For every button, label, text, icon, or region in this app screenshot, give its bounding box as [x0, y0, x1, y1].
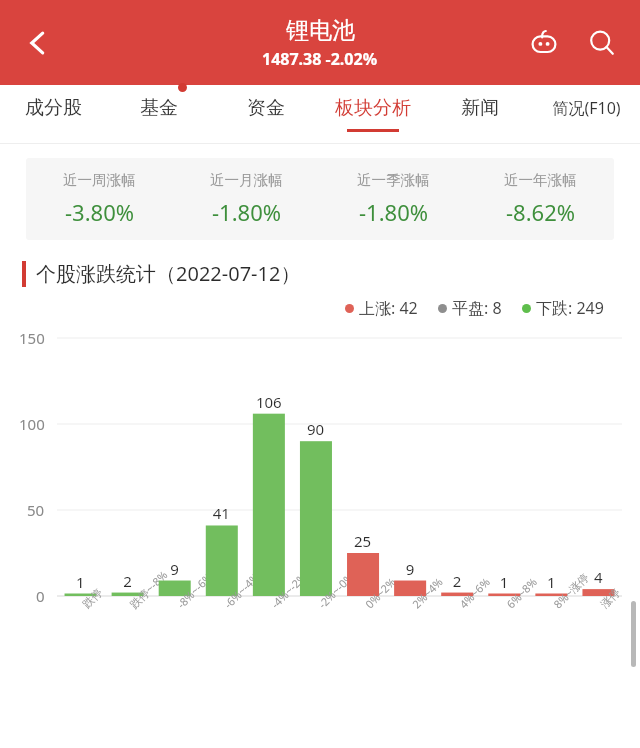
staticText: 近一年涨幅	[504, 171, 577, 189]
button[interactable]: 基金	[106, 85, 212, 143]
button[interactable]: 资金	[212, 85, 319, 143]
staticText: 1487.38 -2.02%	[262, 48, 378, 70]
button[interactable]: Search	[578, 19, 626, 67]
staticText: 近一季涨幅	[357, 171, 430, 189]
button[interactable]: 近一周涨幅	[26, 171, 173, 227]
staticText: 个股涨跌统计（2022-07-12）	[36, 260, 301, 287]
button[interactable]: Back	[12, 17, 64, 69]
button[interactable]: 简况(F10)	[533, 85, 640, 143]
button[interactable]: 成分股	[0, 85, 106, 143]
staticText: 简况(F10)	[552, 97, 621, 119]
button[interactable]: 新闻	[426, 85, 533, 143]
staticText: 近一周涨幅	[63, 171, 136, 189]
staticText: 成分股	[25, 96, 82, 120]
staticText: 基金	[140, 96, 178, 120]
staticText: 平盘: 8	[452, 297, 502, 319]
staticText: 上涨: 42	[359, 297, 418, 319]
button[interactable]: AI assistant	[520, 19, 568, 67]
staticText: 板块分析	[335, 96, 411, 120]
button[interactable]: 近一月涨幅	[173, 171, 320, 227]
button[interactable]: 近一年涨幅	[467, 171, 614, 227]
staticText: 下跌: 249	[536, 297, 604, 319]
button[interactable]: 板块分析	[319, 85, 426, 143]
staticText: 近一月涨幅	[210, 171, 283, 189]
staticText: -8.62%	[506, 197, 576, 227]
staticText: -3.80%	[65, 197, 135, 227]
staticText: -1.80%	[212, 197, 282, 227]
staticText: 资金	[247, 96, 285, 120]
staticText: 锂电池	[286, 16, 355, 45]
staticText: 新闻	[461, 96, 499, 120]
button[interactable]: 近一季涨幅	[320, 171, 467, 227]
staticText: -1.80%	[359, 197, 429, 227]
